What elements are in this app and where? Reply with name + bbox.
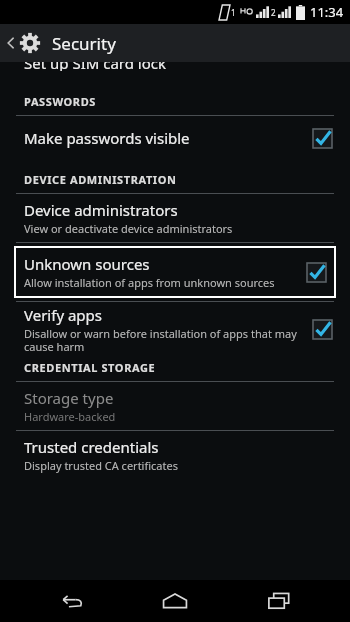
button[interactable]: Security [0,24,350,62]
button[interactable]: Make passwords visible [0,116,350,160]
staticText: Set up SIM card lock [24,62,167,71]
staticText: Make passwords visible [24,128,190,148]
staticText: Hardware-backed [24,409,116,424]
staticText: 2 [271,7,276,18]
staticText: 1 [231,7,236,18]
other: Toggle setting [313,129,332,148]
button[interactable]: Trusted credentials [0,431,350,479]
staticText: CREDENTIAL STORAGE [24,360,156,375]
staticText: Display trusted CA certificates [24,458,178,473]
button[interactable]: Unknown sources [14,246,336,298]
staticText: Disallow or warn before installation of … [24,326,305,354]
button[interactable]: Recent apps [247,580,311,622]
staticText: PASSWORDS [24,94,96,109]
button[interactable]: Verify apps [0,302,350,356]
button[interactable]: Set up SIM card lock [0,62,350,80]
staticText: Allow installation of apps from unknown … [24,275,275,290]
other: Toggle setting [313,320,332,339]
staticText: Storage type [24,388,114,408]
staticText: Device administrators [24,200,178,220]
staticText: Unknown sources [24,254,150,274]
staticText: 11:34 [310,3,344,21]
button[interactable]: Back [40,580,104,622]
button[interactable]: Device administrators [0,194,350,242]
staticText: View or deactivate device administrators [24,221,233,236]
staticText: Security [52,32,116,55]
staticText: Verify apps [24,305,102,325]
other: Toggle setting [307,263,326,282]
button[interactable]: Home [143,580,207,622]
staticText: DEVICE ADMINISTRATION [24,172,177,187]
staticText: Trusted credentials [24,437,159,457]
